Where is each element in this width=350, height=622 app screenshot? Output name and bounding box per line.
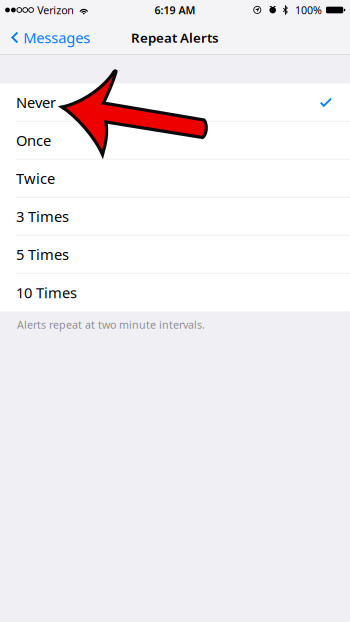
- staticText: 6:19 AM: [154, 3, 195, 17]
- staticText: Twice: [16, 168, 55, 188]
- button[interactable]: Messages: [0, 21, 95, 54]
- staticText: Verizon: [37, 3, 74, 17]
- staticText: 5 Times: [16, 244, 69, 264]
- staticText: 3 Times: [16, 206, 69, 226]
- staticText: Repeat Alerts: [131, 29, 219, 46]
- button[interactable]: 5 Times: [0, 235, 350, 273]
- staticText: Never: [16, 92, 56, 112]
- staticText: Messages: [23, 28, 90, 47]
- staticText: 10 Times: [16, 283, 77, 302]
- staticText: 100%: [295, 3, 322, 17]
- button[interactable]: Once: [0, 121, 350, 159]
- button[interactable]: 3 Times: [0, 197, 350, 235]
- button[interactable]: Twice: [0, 159, 350, 197]
- button[interactable]: Never: [0, 83, 350, 121]
- staticText: Alerts repeat at two minute intervals.: [17, 317, 205, 332]
- button[interactable]: 10 Times: [0, 273, 350, 311]
- staticText: Once: [16, 130, 51, 150]
